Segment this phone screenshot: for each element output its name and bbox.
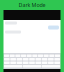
staticText: Dark Mode [18, 1, 45, 9]
